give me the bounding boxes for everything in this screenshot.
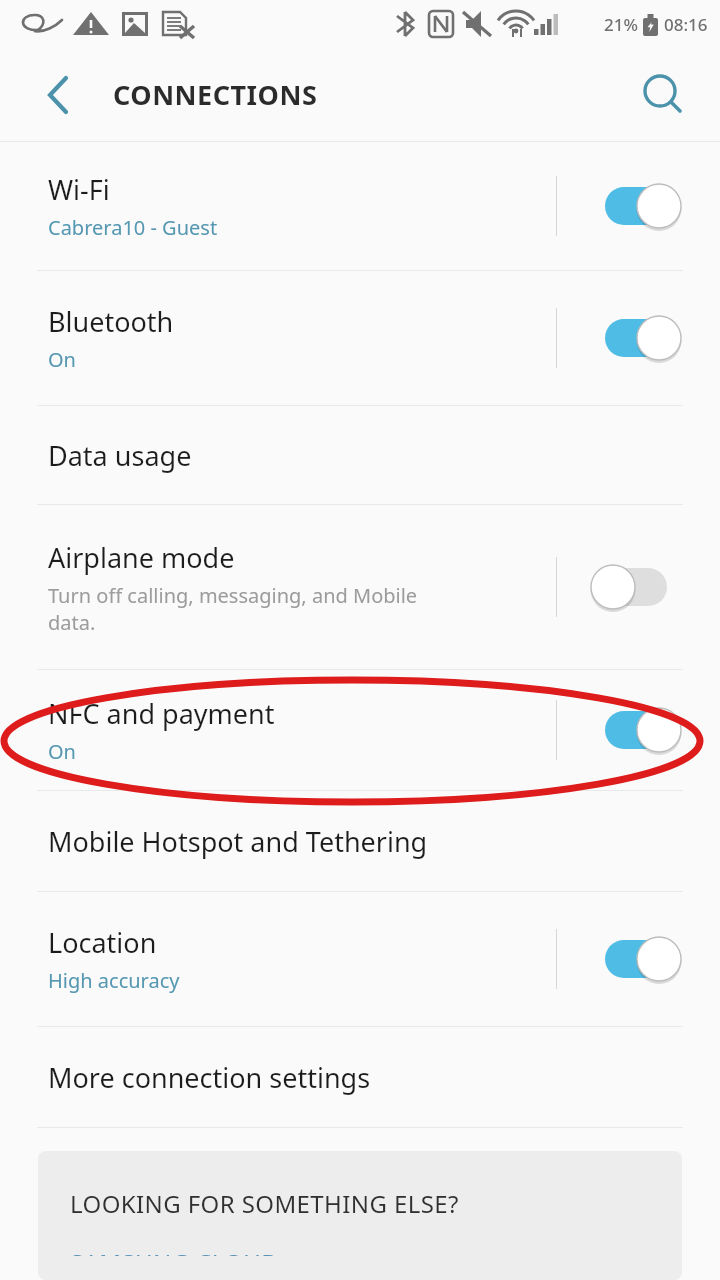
staticText: Location [48, 924, 157, 961]
button[interactable]: Wi-Fi toggle [557, 142, 720, 270]
button[interactable]: LOOKING FOR SOMETHING ELSE? [38, 1151, 682, 1280]
staticText: 08:16 [664, 13, 708, 36]
button[interactable]: NFC and payment toggle [557, 670, 720, 790]
staticText: Bluetooth [48, 303, 174, 340]
button[interactable]: Location [0, 892, 720, 1026]
button[interactable]: Bluetooth toggle [557, 271, 720, 405]
button[interactable]: Airplane mode [0, 505, 720, 669]
staticText: Wi-Fi [48, 171, 110, 208]
staticText: NFC and payment [48, 695, 275, 732]
staticText: SAMSUNG CLOUD [70, 1246, 280, 1256]
staticText: LOOKING FOR SOMETHING ELSE? [70, 1187, 459, 1220]
button[interactable]: More connection settings [0, 1027, 720, 1127]
staticText: Mobile Hotspot and Tethering [48, 823, 428, 860]
staticText: High accuracy [48, 967, 180, 994]
button[interactable]: Location toggle [557, 892, 720, 1026]
button[interactable]: Mobile Hotspot and Tethering [0, 791, 720, 891]
button[interactable]: Bluetooth [0, 271, 720, 405]
staticText: Turn off calling, messaging, and Mobile … [48, 582, 418, 636]
button[interactable]: Wi-Fi [0, 142, 720, 270]
button[interactable]: NFC and payment [0, 670, 720, 790]
staticText: On [48, 738, 76, 765]
button[interactable]: Data usage [0, 406, 720, 504]
button[interactable]: Back [30, 67, 86, 123]
staticText: On [48, 346, 76, 373]
staticText: Airplane mode [48, 539, 235, 576]
staticText: More connection settings [48, 1059, 371, 1096]
staticText: 21% [604, 13, 638, 36]
staticText: Cabrera10 - Guest [48, 214, 218, 241]
button[interactable]: Airplane mode toggle [557, 505, 720, 669]
staticText: Data usage [48, 437, 192, 474]
staticText: CONNECTIONS [113, 76, 318, 113]
button[interactable]: Search [632, 64, 694, 126]
